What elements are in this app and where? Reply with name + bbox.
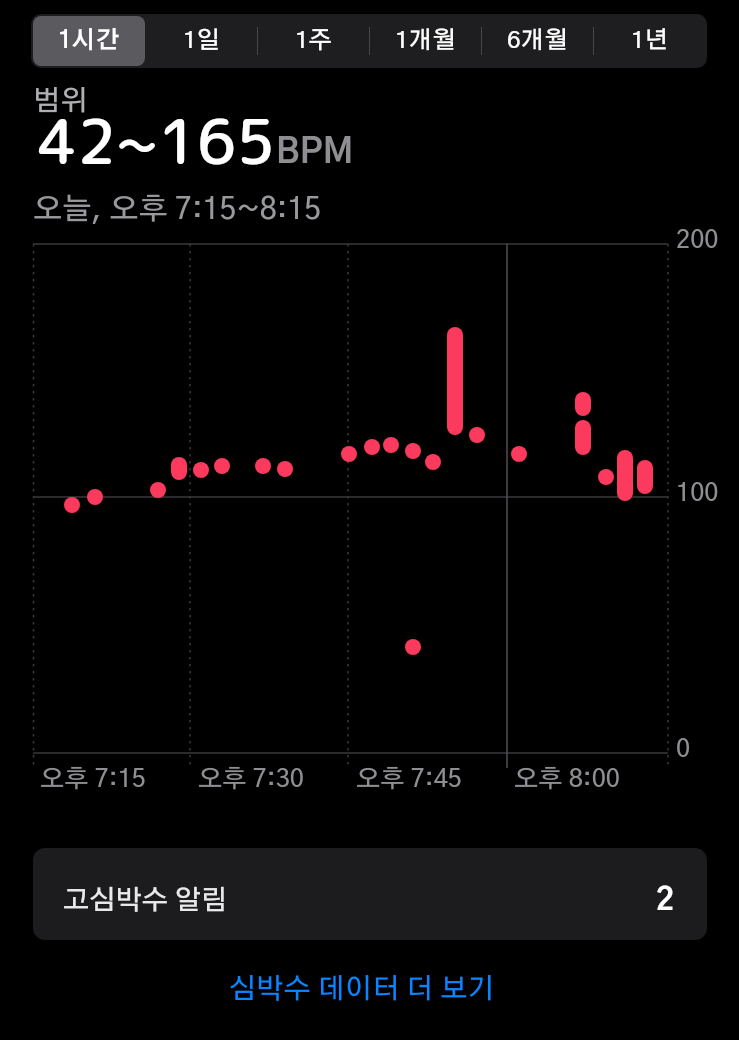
button[interactable]: 6개월 <box>482 16 593 66</box>
staticText: 1년 <box>631 29 668 53</box>
staticText: 오후 7:45 <box>356 767 462 792</box>
button[interactable]: 1년 <box>594 16 705 66</box>
staticText: 6개월 <box>507 29 568 53</box>
staticText: 1시간 <box>58 29 120 53</box>
button[interactable]: 1주 <box>258 16 369 66</box>
staticText: 1주 <box>295 29 332 53</box>
staticText: 100 <box>676 481 719 506</box>
staticText: 1일 <box>183 29 220 53</box>
staticText: 고심박수 알림 <box>63 887 228 914</box>
staticText: BPM <box>276 136 354 170</box>
button[interactable]: 1개월 <box>370 16 481 66</box>
staticText: 42~165 <box>38 97 276 183</box>
staticText: 오후 8:00 <box>514 767 620 792</box>
staticText: 2 <box>656 885 675 916</box>
staticText: 오후 7:15 <box>40 767 146 792</box>
button[interactable]: 심박수 데이터 더 보기 <box>221 970 503 1010</box>
staticText: 0 <box>676 737 691 762</box>
staticText: 1개월 <box>395 29 456 53</box>
button[interactable]: 1시간 <box>33 16 145 66</box>
button[interactable]: 1일 <box>146 16 257 66</box>
staticText: 범위 <box>33 88 88 116</box>
staticText: 오늘, 오후 7:15~8:15 <box>33 195 322 225</box>
staticText: 200 <box>676 228 719 253</box>
staticText: 오후 7:30 <box>198 767 304 792</box>
button[interactable]: 고심박수 알림 <box>33 848 707 940</box>
